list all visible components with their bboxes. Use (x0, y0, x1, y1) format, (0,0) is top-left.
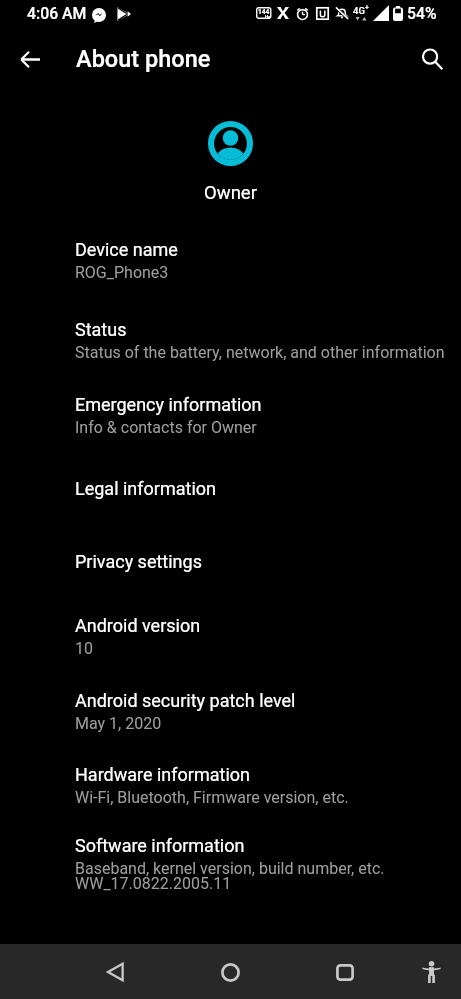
staticText: About phone (76, 45, 211, 73)
staticText: Hz (265, 14, 271, 19)
button[interactable]: Hardware information (0, 755, 461, 816)
button[interactable]: Back (10, 39, 50, 79)
staticText: Baseband, kernel version, build number, … (75, 859, 385, 893)
button[interactable]: Search (411, 38, 453, 80)
staticText: 4G (353, 5, 365, 16)
staticText: 4:06 AM (27, 4, 87, 23)
staticText: Android security patch level (75, 690, 296, 711)
staticText: Status of the battery, network, and othe… (75, 343, 445, 362)
staticText: Emergency information (75, 394, 262, 415)
staticText: May 1, 2020 (75, 714, 162, 733)
button[interactable]: Recent apps (321, 948, 369, 996)
staticText: Legal information (75, 478, 216, 499)
button[interactable]: Privacy settings (0, 542, 461, 581)
button[interactable]: Legal information (0, 469, 461, 508)
button[interactable]: Back (91, 948, 139, 996)
staticText: Software information (75, 835, 245, 856)
staticText: Privacy settings (75, 551, 202, 572)
button[interactable]: Android security patch level (0, 681, 461, 742)
button[interactable]: Accessibility (407, 948, 455, 996)
button[interactable]: Status (0, 310, 461, 371)
staticText: Device name (75, 239, 178, 260)
staticText: Info & contacts for Owner (75, 418, 257, 437)
button[interactable]: Home (206, 948, 254, 996)
staticText: Hardware information (75, 764, 250, 785)
staticText: Owner (204, 182, 257, 204)
staticText: + (365, 4, 369, 12)
staticText: Status (75, 319, 127, 340)
staticText: 144 (258, 8, 270, 16)
button[interactable]: Emergency information (0, 385, 461, 446)
staticText: ROG_Phone3 (75, 263, 169, 282)
staticText: 10 (75, 639, 93, 658)
staticText: Android version (75, 615, 201, 636)
button[interactable]: Android version (0, 606, 461, 667)
staticText: Wi-Fi, Bluetooth, Firmware version, etc. (75, 788, 349, 807)
button[interactable]: Software information (0, 826, 461, 902)
button[interactable]: Device name (0, 230, 461, 291)
staticText: 54% (407, 4, 437, 23)
